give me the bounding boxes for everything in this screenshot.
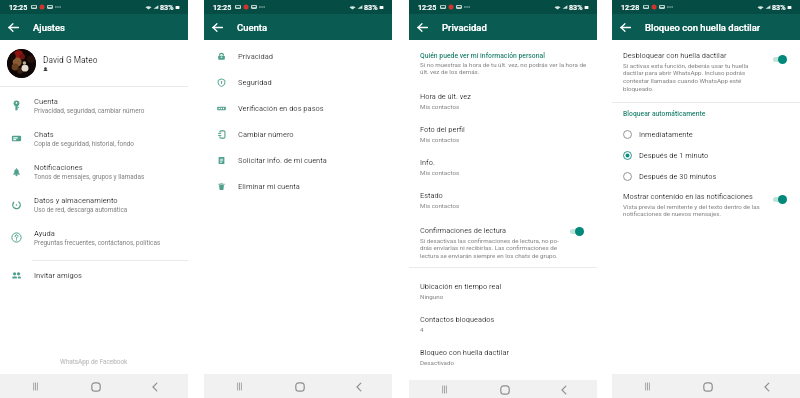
button[interactable]: Eliminar mi cuenta [204, 173, 392, 199]
staticText: Privacidad [238, 52, 274, 61]
staticText: Estado [420, 191, 443, 200]
button[interactable]: Chats [0, 122, 188, 155]
staticText: Foto del perfil [420, 125, 465, 134]
button[interactable]: Foto del perfil [409, 124, 597, 157]
staticText: Cuenta [237, 22, 268, 33]
button[interactable]: Contactos bloqueados [409, 314, 597, 347]
staticText: Ajustes [33, 22, 65, 33]
staticText: Si no muestras la hora de tu últ. vez, n… [420, 61, 587, 76]
button[interactable]: Recent apps [437, 382, 452, 397]
staticText: Datos y almacenamiento [34, 196, 118, 205]
button[interactable]: Home [292, 379, 307, 394]
button[interactable]: Confirmaciones de lectura [409, 226, 597, 260]
staticText: Ubicación en tiempo real [420, 282, 502, 291]
staticText: Invitar amigos [34, 271, 83, 280]
staticText: Desactivado [420, 359, 455, 366]
staticText: Notificaciones [34, 163, 83, 172]
staticText: Si activas esta función, deberás usar tu… [623, 62, 749, 93]
staticText: Inmediatamente [639, 130, 693, 139]
button[interactable]: Toggle [570, 227, 584, 236]
button[interactable]: Desbloquear con huella dactilar [612, 51, 800, 93]
button[interactable]: Back [556, 382, 571, 397]
button[interactable]: Hora de últ. vez [409, 91, 597, 124]
staticText: Info. [420, 158, 435, 167]
staticText: 12:25 [213, 3, 232, 11]
staticText: Mis contactos [420, 169, 460, 176]
button[interactable]: Notificaciones [0, 155, 188, 188]
button[interactable]: Después de 1 minuto [612, 145, 800, 166]
staticText: David G Mateo [43, 55, 98, 65]
button[interactable]: Recent apps [232, 379, 247, 394]
staticText: Contactos bloqueados [420, 315, 495, 324]
staticText: Privacidad [442, 22, 487, 33]
staticText: Chats [34, 130, 54, 139]
staticText: Mis contactos [420, 136, 460, 143]
staticText: 83% [772, 3, 786, 11]
staticText: Mis contactos [420, 202, 460, 209]
staticText: 83% [569, 3, 583, 11]
staticText: 12:25 [418, 3, 437, 11]
staticText: Desbloquear con huella dactilar [623, 51, 727, 60]
button[interactable]: Back [409, 14, 435, 40]
staticText: Si desactivas las confirmaciones de lect… [420, 237, 559, 260]
button[interactable]: Inmediatamente [612, 124, 800, 145]
staticText: Seguridad [238, 78, 272, 87]
staticText: Vista previa del remitente y del texto d… [623, 203, 760, 218]
staticText: Solicitar info. de mi cuenta [238, 156, 327, 165]
button[interactable]: Toggle [773, 55, 787, 64]
button[interactable]: Ubicación en tiempo real [409, 281, 597, 314]
button[interactable]: Info. [409, 157, 597, 190]
staticText: Hora de últ. vez [420, 92, 471, 101]
staticText: Uso de red, descarga automática [34, 206, 128, 214]
button[interactable]: Back [351, 379, 366, 394]
staticText: Mostrar contenido en las notificaciones [623, 192, 753, 201]
button[interactable]: Toggle [773, 195, 787, 204]
button[interactable]: Privacidad [204, 43, 392, 69]
staticText: WhatsApp de Facebook [60, 358, 128, 366]
staticText: Después de 30 minutos [639, 172, 717, 181]
staticText: 12:25 [9, 3, 28, 11]
staticText: Verificación en dos pasos [238, 104, 324, 113]
staticText: 4 [420, 326, 424, 333]
button[interactable]: Cambiar número [204, 121, 392, 147]
staticText: 83% [364, 3, 378, 11]
button[interactable]: Verificación en dos pasos [204, 95, 392, 121]
staticText: Quién puede ver mi información personal [420, 52, 545, 60]
button[interactable]: Cuenta [0, 89, 188, 122]
button[interactable]: Back [0, 14, 26, 40]
staticText: Bloqueo con huella dactilar [420, 348, 509, 357]
button[interactable]: Back [147, 379, 162, 394]
staticText: Cuenta [34, 97, 58, 106]
button[interactable]: Home [700, 379, 715, 394]
staticText: 12:28 [621, 3, 640, 11]
staticText: Bloquear automáticamente [623, 110, 706, 118]
button[interactable]: Solicitar info. de mi cuenta [204, 147, 392, 173]
button[interactable]: David G Mateo [0, 40, 188, 86]
staticText: 83% [160, 3, 174, 11]
staticText: Copia de seguridad, historial, fondo [34, 140, 134, 148]
staticText: Preguntas frecuentes, contáctanos, polít… [34, 239, 161, 247]
button[interactable]: Datos y almacenamiento [0, 188, 188, 221]
staticText: Tonos de mensajes, grupos y llamadas [34, 173, 145, 181]
button[interactable]: Back [612, 14, 638, 40]
button[interactable]: Estado [409, 190, 597, 223]
button[interactable]: Invitar amigos [0, 261, 188, 289]
button[interactable]: Home [497, 382, 512, 397]
staticText: Bloqueo con huella dactilar [645, 22, 761, 33]
button[interactable]: Back [204, 14, 230, 40]
button[interactable]: Ayuda [0, 221, 188, 254]
staticText: Confirmaciones de lectura [420, 226, 507, 235]
button[interactable]: Seguridad [204, 69, 392, 95]
button[interactable]: Back [759, 379, 774, 394]
staticText: Privacidad, seguridad, cambiar número [34, 107, 145, 115]
button[interactable]: Recent apps [28, 379, 43, 394]
button[interactable]: Después de 30 minutos [612, 166, 800, 187]
staticText: Ninguno [420, 293, 444, 300]
button[interactable]: Recent apps [640, 379, 655, 394]
staticText: Eliminar mi cuenta [238, 182, 300, 191]
staticText: Cambiar número [238, 130, 294, 139]
button[interactable]: Bloqueo con huella dactilar [409, 347, 597, 380]
button[interactable]: Home [88, 379, 103, 394]
staticText: Mis contactos [420, 103, 460, 110]
button[interactable]: Mostrar contenido en las notificaciones [612, 192, 800, 218]
